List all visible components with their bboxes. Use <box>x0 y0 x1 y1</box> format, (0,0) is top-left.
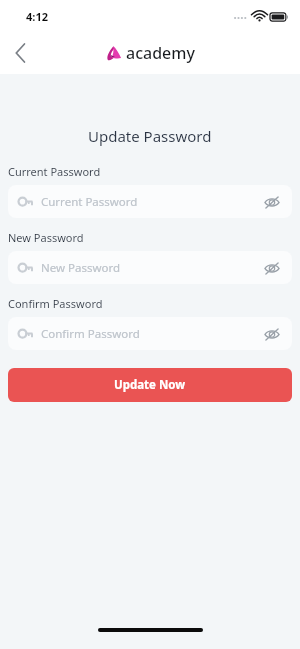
staticText: Update Password <box>88 126 212 146</box>
staticText: Current Password <box>8 164 101 179</box>
staticText: Confirm Password <box>8 296 103 311</box>
button[interactable]: Show password <box>262 324 282 344</box>
button[interactable]: Update Now <box>8 368 292 402</box>
staticText: academy <box>126 42 195 64</box>
staticText: Current Password <box>41 194 262 210</box>
staticText: 4:12 <box>26 9 48 24</box>
button[interactable]: Back <box>0 33 40 73</box>
button[interactable]: Current Password <box>8 185 292 218</box>
staticText: New Password <box>8 230 84 245</box>
button[interactable]: New Password <box>8 251 292 284</box>
button[interactable]: Show password <box>262 192 282 212</box>
staticText: Update Now <box>114 377 186 393</box>
staticText: Confirm Password <box>41 326 262 342</box>
button[interactable]: Confirm Password <box>8 317 292 350</box>
button[interactable]: Show password <box>262 258 282 278</box>
staticText: New Password <box>41 260 262 276</box>
